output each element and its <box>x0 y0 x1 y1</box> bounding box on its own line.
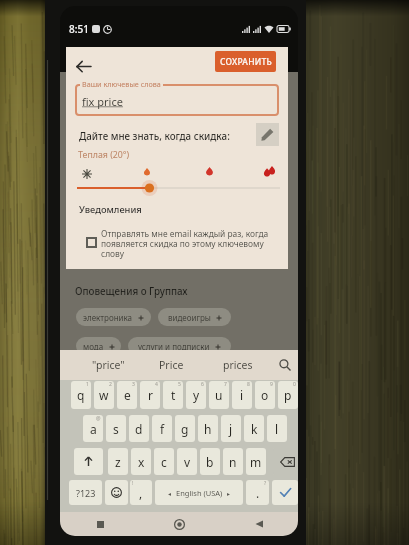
staticText: 2 <box>109 381 112 388</box>
staticText: t <box>171 387 176 403</box>
staticText: p <box>284 387 292 403</box>
staticText: 4 <box>155 381 158 388</box>
button[interactable]: b <box>200 448 220 475</box>
button[interactable]: l <box>267 415 287 442</box>
button[interactable]: z <box>108 448 128 475</box>
button[interactable]: q <box>71 381 91 409</box>
button[interactable]: u <box>209 381 229 409</box>
staticText: Теплая (20°) <box>78 149 130 161</box>
staticText: Уведомления <box>79 203 142 216</box>
staticText: Оповещения о Группах <box>75 285 188 298</box>
button[interactable]: Space <box>155 480 243 505</box>
staticText: 6 <box>201 381 204 388</box>
button[interactable]: r <box>140 381 160 409</box>
staticText: видеоигры <box>168 312 211 323</box>
staticText: m <box>250 454 262 470</box>
button[interactable]: Recent apps <box>60 512 140 536</box>
button[interactable]: i <box>232 381 252 409</box>
staticText: l <box>275 421 279 437</box>
button[interactable]: Emoji <box>105 480 128 505</box>
staticText: Дайте мне знать, когда скидка: <box>79 130 230 143</box>
staticText: услуги и подписки <box>138 341 210 352</box>
staticText: мода <box>83 341 104 352</box>
button[interactable]: Home <box>140 512 219 536</box>
button[interactable]: Back <box>219 512 298 536</box>
staticText: b <box>206 454 214 470</box>
button[interactable]: t <box>163 381 183 409</box>
staticText: g <box>181 421 189 437</box>
button[interactable]: СОХРАНИТЬ <box>215 51 276 72</box>
button[interactable]: "price" <box>77 350 139 380</box>
staticText: v <box>184 454 191 470</box>
staticText: c <box>161 454 167 470</box>
staticText: n <box>229 454 237 470</box>
staticText: z <box>115 454 121 470</box>
staticText: f <box>160 421 165 437</box>
button[interactable]: Search <box>272 350 297 380</box>
button[interactable]: a <box>83 415 103 442</box>
staticText: h <box>204 421 212 437</box>
staticText: 3 <box>132 381 135 388</box>
staticText: j <box>229 421 233 437</box>
button[interactable]: Backspace <box>273 448 298 475</box>
button[interactable]: Shift <box>74 448 103 475</box>
button[interactable]: , <box>130 480 152 505</box>
button[interactable]: j <box>221 415 241 442</box>
button[interactable]: Enter <box>272 480 298 505</box>
button[interactable]: электроника <box>76 308 151 326</box>
staticText: "price" <box>92 358 125 372</box>
staticText: ◂ <box>168 490 172 497</box>
staticText: w <box>99 387 109 403</box>
staticText: электроника <box>83 312 133 323</box>
staticText: ▸ <box>227 490 231 497</box>
button[interactable]: g <box>175 415 195 442</box>
staticText: 8:51 <box>69 22 89 36</box>
staticText: 8 <box>247 381 250 388</box>
staticText: 5 <box>178 381 181 388</box>
staticText: e <box>124 387 131 403</box>
other: Cold <box>82 169 92 179</box>
staticText: i <box>240 387 244 403</box>
button[interactable]: s <box>106 415 126 442</box>
button[interactable]: h <box>198 415 218 442</box>
button[interactable]: . <box>246 480 269 505</box>
staticText: a <box>90 421 97 437</box>
staticText: d <box>135 421 143 437</box>
button[interactable]: Edit <box>256 123 279 146</box>
staticText: k <box>251 421 258 437</box>
button[interactable]: e <box>117 381 137 409</box>
button[interactable]: Price <box>140 350 202 380</box>
button[interactable]: видеоигры <box>158 308 231 326</box>
button[interactable]: Symbols <box>69 480 102 505</box>
button[interactable]: o <box>255 381 275 409</box>
other: Very hot <box>263 166 276 177</box>
staticText: 0 <box>293 381 296 388</box>
button[interactable]: prices <box>207 350 269 380</box>
button[interactable]: y <box>186 381 206 409</box>
staticText: ? <box>264 480 267 487</box>
button[interactable]: x <box>131 448 151 475</box>
staticText: ! <box>132 480 134 487</box>
button[interactable]: Back <box>74 55 94 75</box>
staticText: , <box>139 485 143 501</box>
button[interactable]: мода <box>76 337 121 355</box>
button[interactable]: m <box>246 448 266 475</box>
button[interactable]: w <box>94 381 114 409</box>
button[interactable] <box>83 228 281 266</box>
staticText: 7 <box>224 381 227 388</box>
button[interactable]: v <box>177 448 197 475</box>
button[interactable]: d <box>129 415 149 442</box>
staticText: ?123 <box>76 487 96 499</box>
button[interactable]: k <box>244 415 264 442</box>
staticText: Отправлять мне email каждый раз, когда п… <box>101 228 279 259</box>
staticText: x <box>138 454 145 470</box>
button[interactable]: c <box>154 448 174 475</box>
staticText: СОХРАНИТЬ <box>220 56 272 68</box>
staticText: u <box>215 387 223 403</box>
button[interactable]: услуги и подписки <box>128 337 231 355</box>
button[interactable]: f <box>152 415 172 442</box>
button[interactable]: n <box>223 448 243 475</box>
button[interactable] <box>75 84 279 116</box>
staticText: y <box>193 387 200 403</box>
button[interactable]: p <box>278 381 298 409</box>
